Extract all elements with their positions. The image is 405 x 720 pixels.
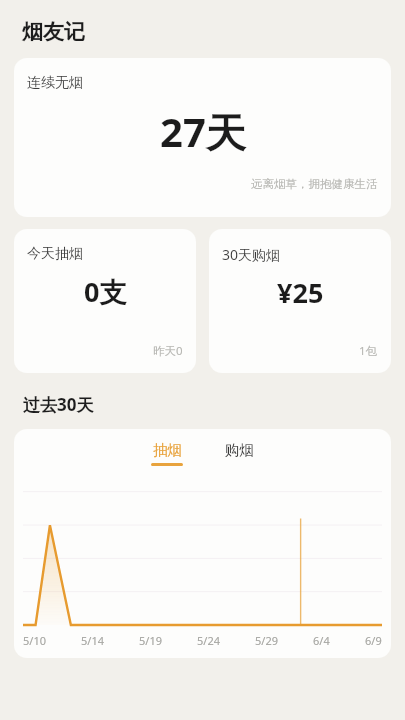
staticText: ¥25	[277, 274, 324, 311]
staticText: 过去30天	[23, 393, 94, 416]
staticText: 购烟	[225, 441, 254, 459]
button[interactable]: 连续无烟	[14, 58, 391, 217]
staticText: 1包	[359, 343, 378, 359]
staticText: 烟友记	[22, 19, 85, 45]
button[interactable]: 抽烟	[147, 439, 187, 468]
staticText: 今天抽烟	[27, 245, 83, 263]
staticText: 6/9	[365, 633, 382, 648]
button[interactable]: 30天购烟	[209, 229, 391, 373]
staticText: 5/10	[23, 633, 46, 648]
staticText: 昨天0	[153, 343, 183, 359]
staticText: 5/29	[255, 633, 278, 648]
staticText: 0支	[84, 273, 127, 310]
staticText: 抽烟	[153, 441, 182, 459]
staticText: 5/19	[139, 633, 162, 648]
staticText: 连续无烟	[27, 74, 83, 92]
staticText: 远离烟草，拥抱健康生活	[251, 177, 378, 191]
staticText: 27天	[160, 104, 246, 159]
button[interactable]: 今天抽烟	[14, 229, 196, 373]
staticText: 6/4	[313, 633, 330, 648]
staticText: 5/14	[81, 633, 104, 648]
button[interactable]: 购烟	[221, 439, 258, 468]
staticText: 5/24	[197, 633, 220, 648]
staticText: 30天购烟	[222, 245, 281, 264]
